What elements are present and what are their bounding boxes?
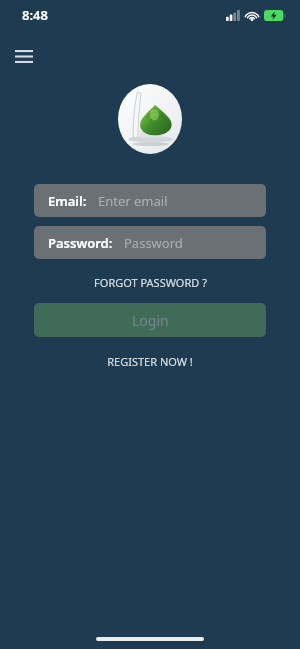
staticText: Login (132, 311, 169, 330)
button[interactable]: REGISTER NOW ! (97, 350, 203, 373)
button[interactable]: Login (34, 303, 266, 337)
button[interactable]: FORGOT PASSWORD ? (84, 271, 217, 294)
button[interactable]: Password: (34, 226, 266, 259)
staticText: Password (124, 234, 183, 252)
staticText: Email: (48, 192, 87, 210)
staticText: Enter email (98, 192, 168, 210)
staticText: 8:48 (22, 6, 48, 24)
staticText: FORGOT PASSWORD ? (94, 275, 207, 290)
button[interactable]: Email: (34, 184, 266, 217)
button[interactable]: Menu (8, 40, 40, 72)
staticText: REGISTER NOW ! (107, 354, 193, 369)
staticText: Password: (48, 234, 113, 252)
